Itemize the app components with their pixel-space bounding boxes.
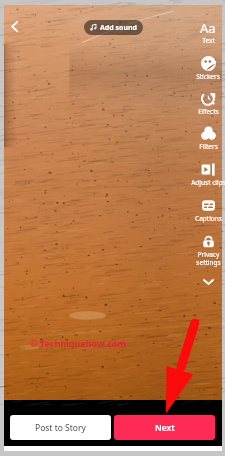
button[interactable]: Add sound: [84, 20, 143, 35]
button[interactable]: Privacy settings: [186, 233, 225, 267]
staticText: Stickers: [196, 72, 220, 81]
button[interactable]: Effects: [186, 90, 225, 116]
button[interactable]: Back: [4, 16, 25, 37]
staticText: Next: [155, 422, 175, 434]
button[interactable]: Aa: [186, 19, 225, 45]
staticText: Post to Story: [35, 422, 86, 434]
staticText: Effects: [198, 107, 219, 116]
staticText: Adjust clips: [191, 178, 225, 187]
staticText: Captions: [195, 214, 222, 223]
staticText: © Techniquehow.com: [30, 337, 126, 349]
staticText: Privacy settings: [196, 250, 221, 267]
staticText: Aa: [200, 19, 216, 35]
button[interactable]: Captions: [186, 197, 225, 223]
button[interactable]: Post to Story: [10, 415, 111, 440]
button[interactable]: Stickers: [186, 55, 225, 81]
staticText: Filters: [199, 142, 218, 151]
button[interactable]: Filters: [186, 125, 225, 151]
button[interactable]: Collapse toolbar: [194, 275, 222, 289]
button[interactable]: Adjust clips: [186, 161, 225, 187]
button[interactable]: Next: [114, 415, 215, 440]
staticText: Text: [202, 36, 215, 45]
staticText: Add sound: [100, 23, 137, 33]
